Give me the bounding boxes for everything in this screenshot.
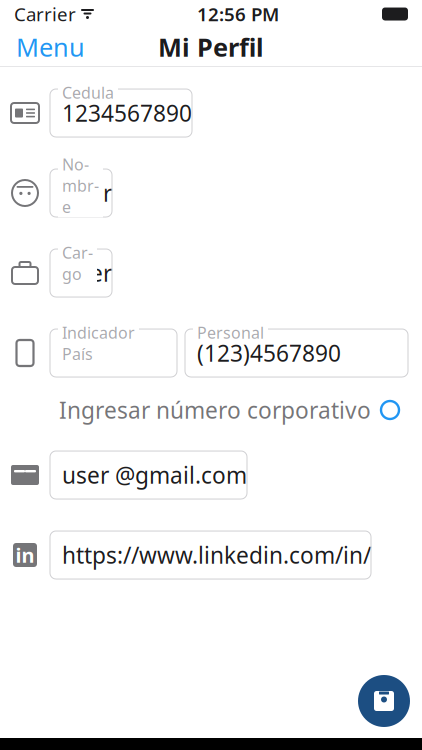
staticText: https://www.linkedin.com/in/ (62, 540, 371, 570)
staticText: 1234567890 (62, 98, 192, 128)
staticText: User (62, 178, 112, 208)
staticText: Carrier (14, 2, 76, 26)
staticText: Indicador País (62, 322, 135, 364)
staticText: in (15, 542, 34, 568)
staticText: User (62, 258, 112, 288)
staticText: Personal (197, 322, 264, 343)
staticText: (123)4567890 (197, 338, 341, 368)
staticText: Menu (16, 30, 85, 64)
staticText: 57 (62, 338, 88, 368)
staticText: user @gmail.com (62, 460, 247, 490)
staticText: Cargo (62, 242, 93, 284)
staticText: 12:56 PM (197, 2, 279, 26)
staticText: Cedula (62, 82, 114, 103)
button[interactable]: Menu (0, 27, 101, 67)
staticText: Mi Perfil (158, 30, 264, 64)
button[interactable]: Guardar (358, 675, 410, 727)
staticText: Ingresar número corporativo (59, 395, 371, 425)
staticText: Nombre (62, 154, 99, 217)
button[interactable]: Ingresar número corporativo (9, 393, 399, 427)
